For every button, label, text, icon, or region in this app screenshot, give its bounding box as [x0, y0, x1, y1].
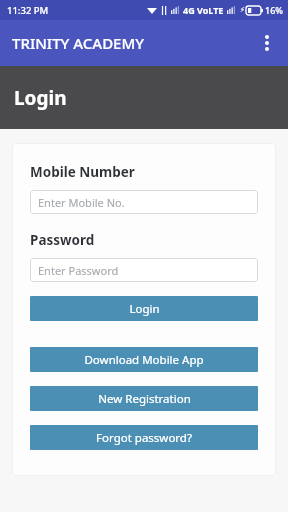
staticText: 11:32 PM: [7, 4, 49, 17]
staticText: 4G VoLTE: [183, 4, 224, 16]
staticText: Forgot password?: [96, 430, 192, 446]
button[interactable]: Download Mobile App: [30, 347, 258, 372]
staticText: Download Mobile App: [84, 352, 204, 368]
staticText: Enter Mobile No.: [38, 195, 125, 210]
staticText: Login: [14, 85, 67, 111]
staticText: 16%: [265, 4, 283, 16]
staticText: Password: [30, 231, 95, 249]
staticText: Enter Password: [38, 263, 119, 278]
staticText: Login: [129, 301, 160, 317]
staticText: TRINITY ACADEMY: [12, 33, 144, 53]
button[interactable]: More options: [246, 22, 288, 64]
button[interactable]: New Registration: [30, 386, 258, 411]
button[interactable]: Login: [30, 296, 258, 321]
staticText: Mobile Number: [30, 163, 135, 181]
button[interactable]: Forgot password?: [30, 425, 258, 450]
staticText: ⚡: [240, 6, 245, 14]
staticText: New Registration: [98, 391, 191, 407]
button[interactable]: Enter Password: [30, 258, 258, 282]
button[interactable]: Enter Mobile No.: [30, 190, 258, 214]
